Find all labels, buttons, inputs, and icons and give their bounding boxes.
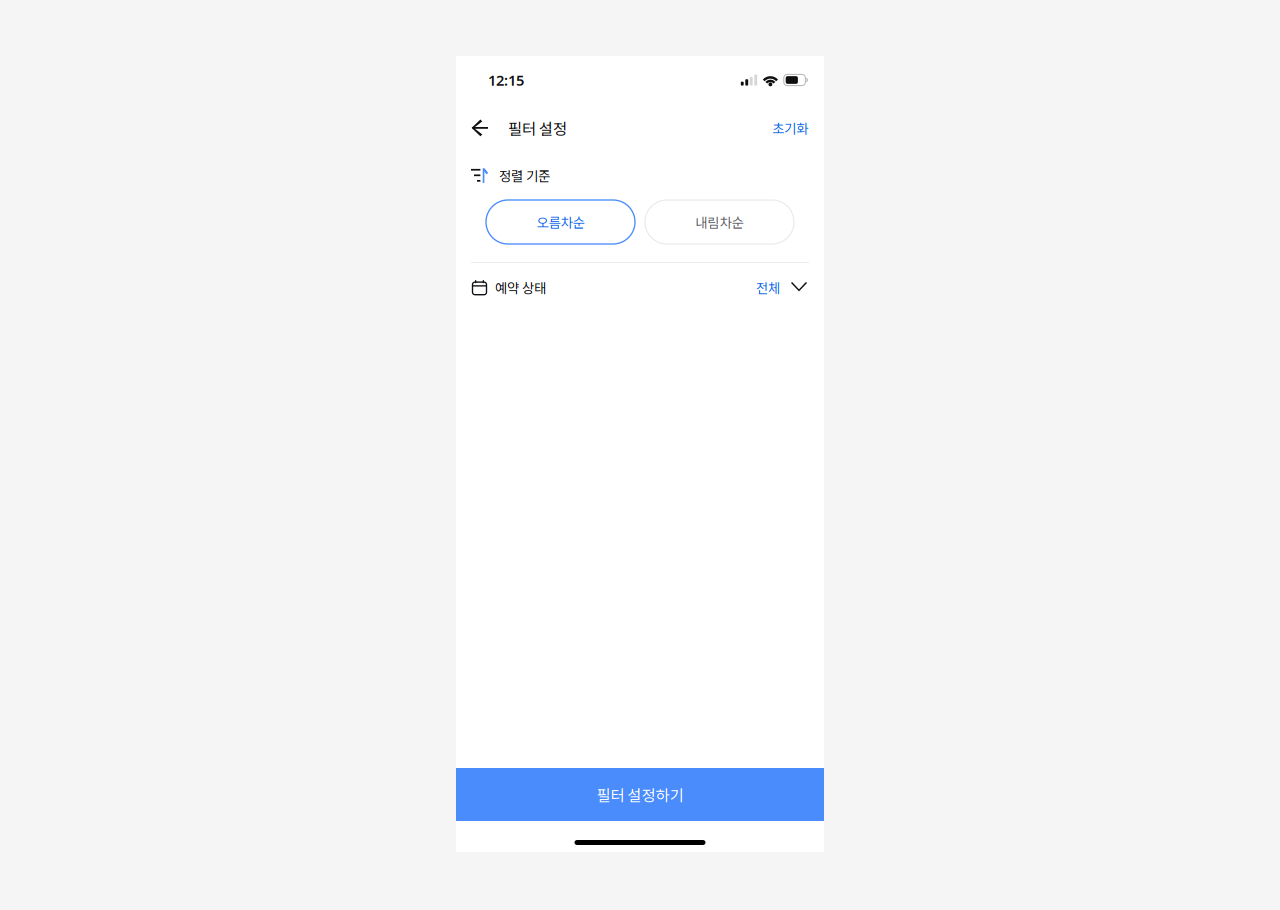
button[interactable]: 뒤로 가기: [471, 104, 508, 152]
button[interactable]: 예약 상태: [456, 263, 824, 312]
button[interactable]: 필터 설정하기: [456, 768, 824, 821]
button[interactable]: 오름차순: [486, 200, 635, 244]
button[interactable]: 내림차순: [645, 200, 794, 244]
staticText: 필터 설정: [508, 117, 567, 139]
staticText: 전체: [756, 278, 780, 297]
staticText: 내림차순: [695, 212, 743, 232]
staticText: 정렬 기준: [499, 166, 550, 185]
staticText: 예약 상태: [495, 278, 546, 297]
staticText: 필터 설정하기: [596, 783, 683, 806]
staticText: 12:15: [488, 70, 524, 90]
staticText: 초기화: [772, 118, 808, 138]
staticText: 오름차순: [536, 212, 584, 232]
button[interactable]: 초기화: [767, 104, 813, 152]
